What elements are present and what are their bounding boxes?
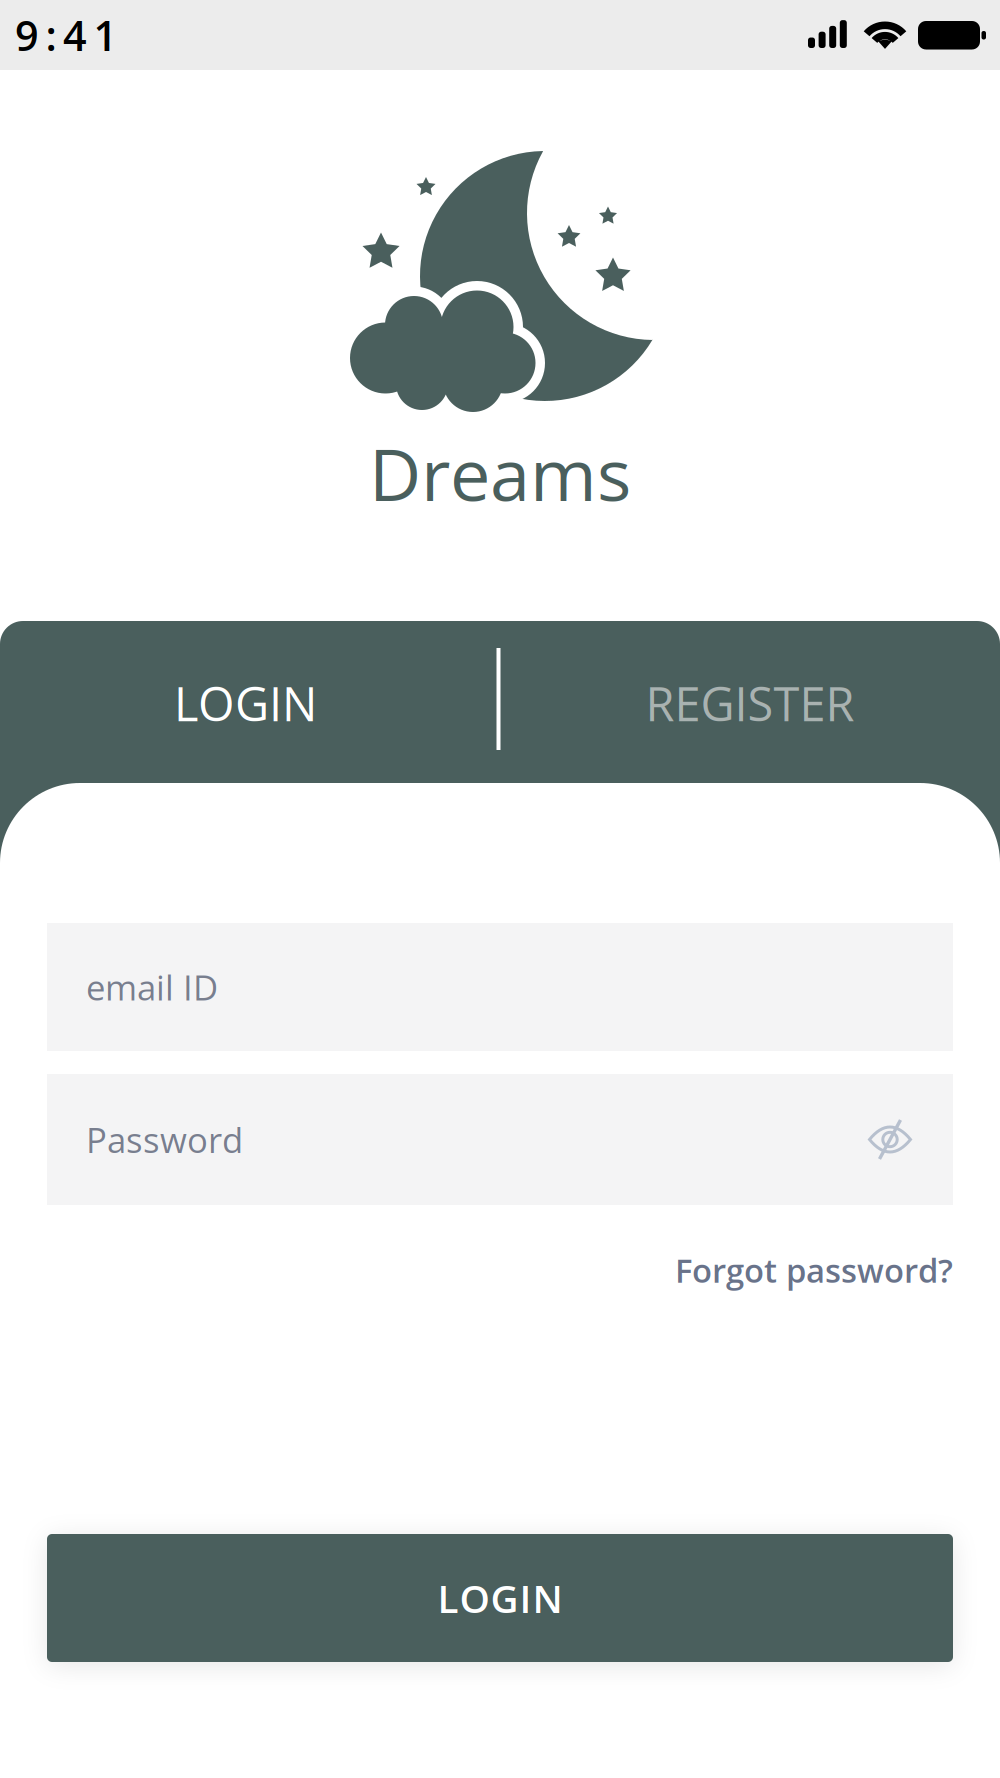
staticText: LOGIN [437, 1572, 562, 1624]
staticText: LOGIN [174, 671, 317, 735]
staticText: email ID [86, 963, 218, 1011]
staticText: REGISTER [645, 671, 854, 735]
staticText: Forgot password? [675, 1248, 953, 1292]
staticText: 9:41 [15, 7, 117, 63]
button[interactable]: Forgot password? [47, 1224, 953, 1316]
button[interactable]: LOGIN [0, 621, 500, 785]
button[interactable]: LOGIN [47, 1534, 953, 1662]
button[interactable]: REGISTER [500, 621, 1000, 785]
staticText: Dreams [369, 424, 631, 522]
staticText: Password [86, 1116, 243, 1163]
button[interactable]: Show password [866, 1117, 914, 1161]
